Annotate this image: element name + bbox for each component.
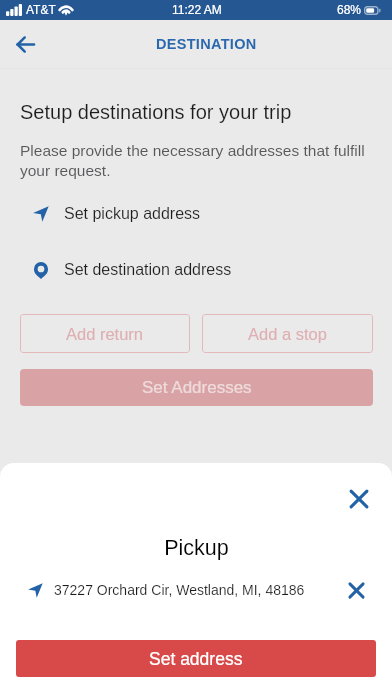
- button[interactable]: Set destination address: [0, 258, 392, 282]
- staticText: AT&T: [26, 3, 56, 16]
- staticText: Add return: [66, 325, 144, 343]
- staticText: DESTINATION: [156, 36, 257, 52]
- button[interactable]: Add return: [20, 314, 190, 353]
- staticText: Please provide the necessary addresses t…: [20, 142, 377, 180]
- staticText: Add a stop: [248, 325, 327, 343]
- button[interactable]: Set Addresses: [20, 369, 373, 406]
- staticText: Set Addresses: [142, 378, 252, 397]
- staticText: 68%: [337, 3, 362, 16]
- button[interactable]: Back: [8, 27, 42, 61]
- button[interactable]: Remove address: [338, 572, 374, 608]
- staticText: Set destination address: [64, 261, 232, 279]
- staticText: Set address: [149, 649, 243, 669]
- staticText: Setup destinations for your trip: [20, 101, 292, 123]
- staticText: Set pickup address: [64, 205, 201, 223]
- button[interactable]: Close: [341, 481, 377, 517]
- button[interactable]: Add a stop: [202, 314, 373, 353]
- staticText: 11:22 AM: [172, 3, 222, 16]
- staticText: 37227 Orchard Cir, Westland, MI, 48186: [54, 582, 305, 598]
- button[interactable]: Set address: [16, 640, 376, 677]
- staticText: Pickup: [164, 536, 229, 560]
- button[interactable]: Set pickup address: [0, 202, 392, 226]
